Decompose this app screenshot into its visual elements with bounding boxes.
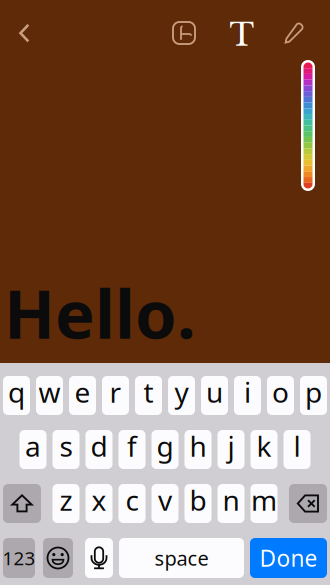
staticText: T [229, 16, 254, 54]
staticText: z [59, 481, 72, 519]
button[interactable]: k [250, 430, 277, 469]
staticText: m [251, 481, 277, 519]
button[interactable]: p [300, 376, 327, 415]
staticText: h [189, 427, 206, 465]
staticText: u [206, 373, 223, 411]
staticText: p [305, 373, 322, 411]
staticText: d [90, 427, 107, 465]
staticText: a [25, 427, 41, 465]
button[interactable]: l [283, 430, 310, 469]
button[interactable]: f [118, 430, 145, 469]
button[interactable]: Emoji [43, 538, 73, 578]
button[interactable]: m [250, 484, 277, 523]
staticText: 123 [2, 546, 35, 570]
button[interactable]: h [184, 430, 211, 469]
button[interactable]: Draw [272, 11, 316, 55]
staticText: f [127, 427, 137, 465]
staticText: t [143, 373, 153, 411]
button[interactable]: g [151, 430, 178, 469]
button[interactable]: q [3, 376, 30, 415]
staticText: r [109, 373, 121, 411]
staticText: i [244, 373, 251, 411]
staticText: j [227, 427, 234, 465]
staticText: o [272, 373, 289, 411]
staticText: l [293, 427, 300, 465]
button[interactable]: 123 [3, 538, 35, 578]
button[interactable]: Dictate [85, 538, 113, 578]
button[interactable]: space [119, 538, 244, 578]
staticText: g [156, 427, 173, 465]
button[interactable]: j [217, 430, 244, 469]
button[interactable]: s [52, 430, 79, 469]
staticText: c [125, 481, 138, 519]
staticText: w [38, 373, 60, 411]
button[interactable]: u [201, 376, 228, 415]
button[interactable]: t [135, 376, 162, 415]
button[interactable]: v [151, 484, 178, 523]
button[interactable]: Stickers [162, 11, 206, 55]
staticText: q [8, 373, 25, 411]
staticText: x [91, 481, 106, 519]
staticText: v [158, 481, 172, 519]
staticText: n [222, 481, 239, 519]
staticText: y [174, 373, 188, 411]
button[interactable]: Done [250, 538, 327, 578]
button[interactable]: Back [2, 11, 46, 55]
button[interactable]: y [168, 376, 195, 415]
button[interactable]: e [69, 376, 96, 415]
staticText: e [74, 373, 90, 411]
staticText: b [189, 481, 206, 519]
button[interactable]: Text [220, 13, 264, 57]
button[interactable]: n [217, 484, 244, 523]
button[interactable]: w [36, 376, 63, 415]
staticText: s [59, 427, 72, 465]
button[interactable]: Delete [289, 484, 327, 523]
staticText: Done [259, 543, 317, 573]
button[interactable]: r [102, 376, 129, 415]
button[interactable]: Shift [3, 484, 41, 523]
button[interactable]: d [85, 430, 112, 469]
button[interactable]: i [234, 376, 261, 415]
staticText: Hello. [4, 269, 196, 357]
staticText: space [154, 545, 208, 571]
button[interactable]: c [118, 484, 145, 523]
button[interactable]: x [85, 484, 112, 523]
button[interactable]: a [19, 430, 46, 469]
staticText: k [256, 427, 271, 465]
button[interactable]: z [52, 484, 79, 523]
button[interactable]: o [267, 376, 294, 415]
button[interactable]: b [184, 484, 211, 523]
button[interactable]: Colour [301, 60, 315, 191]
